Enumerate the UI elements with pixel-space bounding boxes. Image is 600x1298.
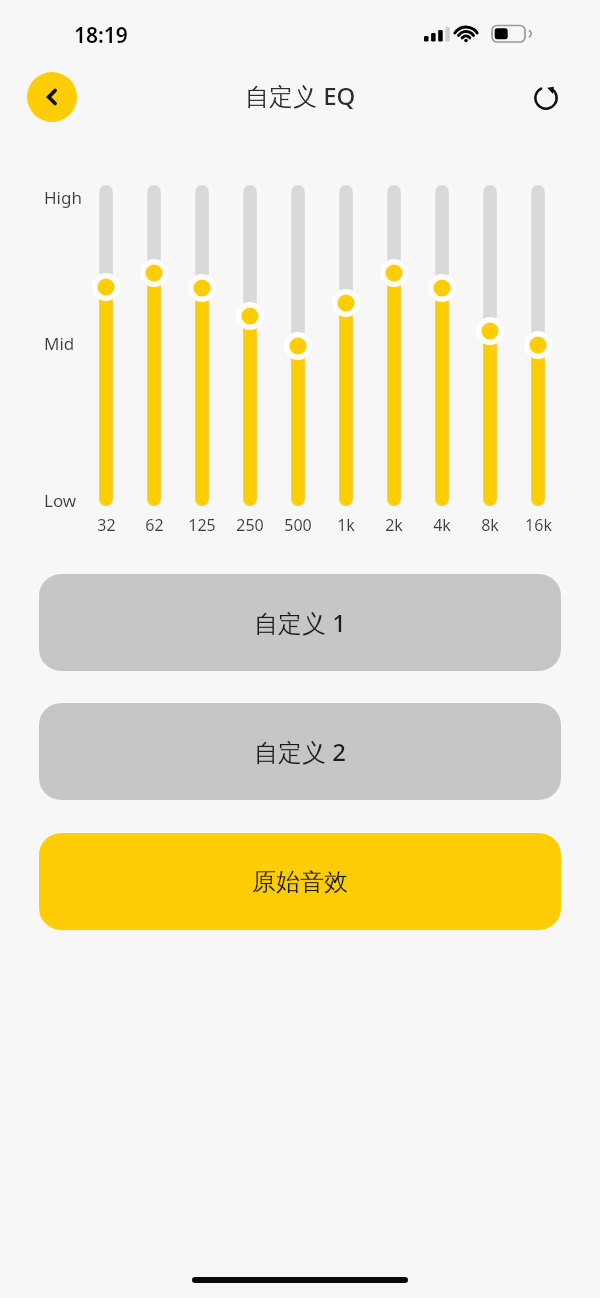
button[interactable]: Band 250 — [230, 185, 270, 506]
button[interactable]: Band 125 — [182, 185, 222, 506]
button[interactable]: Band 8k — [470, 185, 510, 506]
staticText: 500 — [284, 514, 312, 536]
staticText: 32 — [97, 514, 116, 536]
staticText: 16k — [525, 514, 552, 536]
staticText: 原始音效 — [252, 867, 348, 897]
button[interactable]: 自定义 2 — [39, 703, 561, 800]
staticText: 125 — [188, 514, 216, 536]
staticText: 4k — [433, 514, 451, 536]
staticText: 自定义 2 — [254, 735, 346, 768]
staticText: 1k — [337, 514, 355, 536]
button[interactable]: Band 2k — [374, 185, 414, 506]
button[interactable]: Band 32 — [86, 185, 126, 506]
staticText: High — [44, 186, 82, 209]
staticText: 自定义 1 — [254, 606, 346, 639]
button[interactable]: Band 16k — [518, 185, 558, 506]
staticText: Low — [44, 489, 77, 512]
button[interactable]: Back — [27, 72, 77, 122]
staticText: 8k — [481, 514, 499, 536]
staticText: 250 — [236, 514, 264, 536]
staticText: 自定义 EQ — [245, 79, 356, 112]
button[interactable]: Band 4k — [422, 185, 462, 506]
staticText: 62 — [145, 514, 164, 536]
button[interactable]: Band 1k — [326, 185, 366, 506]
staticText: 2k — [385, 514, 403, 536]
button[interactable]: Band 62 — [134, 185, 174, 506]
button[interactable]: 原始音效 — [39, 833, 561, 930]
button[interactable]: 自定义 1 — [39, 574, 561, 671]
staticText: 18:19 — [74, 21, 128, 50]
button[interactable]: Reset — [522, 73, 570, 121]
staticText: Mid — [44, 332, 75, 355]
button[interactable]: Band 500 — [278, 185, 318, 506]
